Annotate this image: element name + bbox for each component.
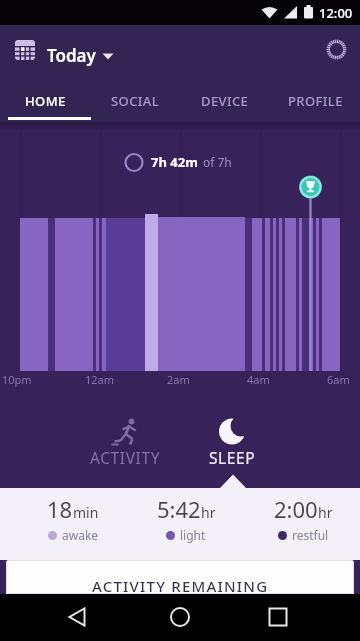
button[interactable]: PROFILE bbox=[270, 86, 360, 122]
staticText: ACTIVITY bbox=[90, 447, 161, 468]
staticText: 4am bbox=[247, 372, 270, 387]
staticText: 7h 42m bbox=[151, 153, 198, 171]
staticText: DEVICE bbox=[201, 92, 249, 110]
button[interactable]: ACTIVITY REMAINING bbox=[6, 560, 354, 594]
staticText: 2am bbox=[167, 372, 190, 387]
staticText: HOME bbox=[25, 92, 66, 110]
staticText: PROFILE bbox=[288, 92, 343, 110]
button[interactable]: SOCIAL bbox=[90, 86, 180, 122]
staticText: 5:42 bbox=[157, 494, 201, 524]
staticText: 12:00 bbox=[319, 4, 353, 22]
staticText: Today bbox=[47, 44, 96, 67]
button[interactable] bbox=[240, 594, 360, 641]
staticText: 2:00 bbox=[274, 494, 318, 524]
button[interactable] bbox=[316, 34, 360, 78]
staticText: hr bbox=[318, 503, 333, 522]
staticText: 10pm bbox=[2, 372, 32, 387]
button[interactable]: DEVICE bbox=[180, 86, 270, 122]
staticText: min bbox=[73, 503, 99, 522]
staticText: ACTIVITY REMAINING bbox=[92, 576, 269, 594]
button[interactable] bbox=[0, 594, 120, 641]
staticText: restful bbox=[292, 527, 329, 543]
button[interactable]: HOME bbox=[0, 86, 90, 122]
staticText: SOCIAL bbox=[111, 92, 160, 110]
button[interactable]: SLEEP bbox=[172, 412, 292, 468]
staticText: 18 bbox=[47, 494, 73, 524]
staticText: 12am bbox=[85, 372, 115, 387]
staticText: 6am bbox=[327, 372, 350, 387]
button[interactable] bbox=[120, 594, 240, 641]
button[interactable] bbox=[0, 25, 61, 86]
staticText: SLEEP bbox=[209, 447, 256, 468]
button[interactable]: ACTIVITY bbox=[45, 412, 205, 468]
staticText: of 7h bbox=[203, 154, 232, 170]
staticText: awake bbox=[62, 527, 99, 543]
staticText: hr bbox=[201, 503, 216, 522]
staticText: light bbox=[180, 527, 206, 543]
button[interactable]: Today bbox=[47, 44, 114, 67]
